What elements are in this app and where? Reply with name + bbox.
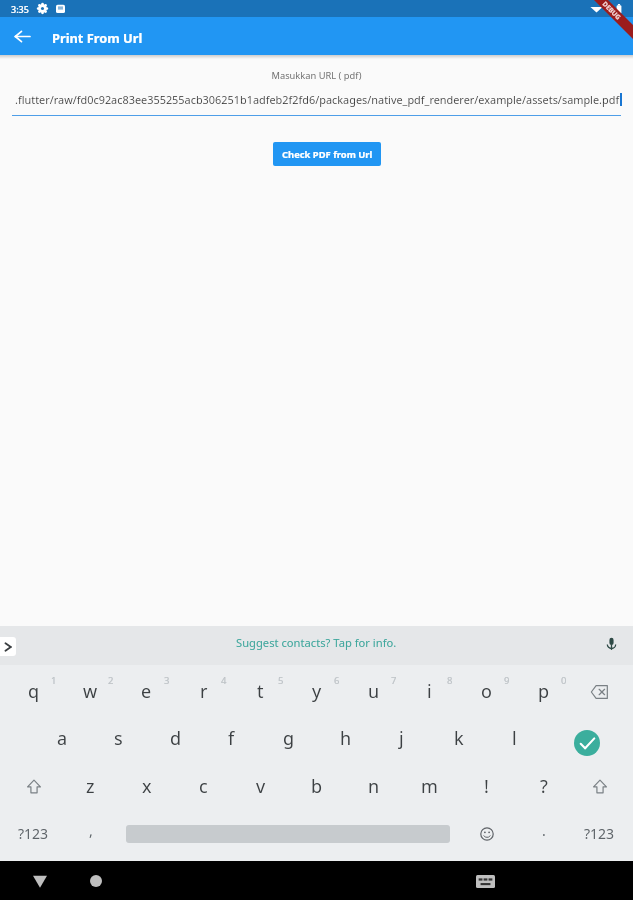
staticText: Masukkan URL ( pdf) xyxy=(0,69,633,82)
button[interactable]: Home xyxy=(82,867,110,895)
staticText: m xyxy=(421,774,438,799)
button[interactable]: Back xyxy=(0,17,44,55)
staticText: , xyxy=(89,821,93,840)
staticText: ?123 xyxy=(584,824,615,843)
staticText: l xyxy=(512,726,517,751)
staticText: d xyxy=(170,726,182,751)
staticText: h xyxy=(340,726,352,751)
staticText: f xyxy=(228,726,235,751)
staticText: v xyxy=(256,774,266,799)
staticText: u xyxy=(368,679,380,704)
button[interactable]: Check PDF from Url xyxy=(273,142,381,166)
staticText: p xyxy=(538,679,550,704)
button[interactable]: j xyxy=(373,715,430,762)
staticText: o xyxy=(481,679,492,704)
staticText: w xyxy=(83,679,98,704)
button[interactable]: Suggest contacts? Tap for info. xyxy=(230,631,403,654)
staticText: 3 xyxy=(164,674,170,687)
staticText: j xyxy=(399,726,404,751)
staticText: ? xyxy=(540,774,548,799)
staticText: k xyxy=(454,726,464,751)
staticText: q xyxy=(28,679,40,704)
button[interactable]: URL input field xyxy=(0,89,633,118)
button[interactable]: Shift xyxy=(571,763,628,810)
staticText: Check PDF from Url xyxy=(282,148,373,161)
button[interactable]: ! xyxy=(458,763,515,810)
staticText: 1 xyxy=(51,674,57,687)
button[interactable]: q xyxy=(5,668,62,715)
button[interactable]: w xyxy=(62,668,119,715)
button[interactable]: s xyxy=(90,715,147,762)
button[interactable]: t xyxy=(232,668,289,715)
button[interactable]: i xyxy=(401,668,458,715)
button[interactable]: a xyxy=(34,715,91,762)
button[interactable]: v xyxy=(232,763,289,810)
button[interactable]: Backspace xyxy=(571,668,628,715)
staticText: s xyxy=(114,726,123,751)
staticText: 3:35 xyxy=(11,3,29,15)
staticText: DEBUG xyxy=(601,0,623,21)
staticText: b xyxy=(311,774,323,799)
staticText: 0 xyxy=(561,674,567,687)
staticText: 4 xyxy=(221,674,227,687)
staticText: x xyxy=(142,774,152,799)
staticText: 2 xyxy=(108,674,114,687)
button[interactable]: g xyxy=(260,715,317,762)
staticText: .flutter/raw/fd0c92ac83ee355255acb306251… xyxy=(15,92,620,107)
staticText: r xyxy=(200,679,208,704)
button[interactable]: y xyxy=(288,668,345,715)
staticText: 6 xyxy=(334,674,340,687)
staticText: c xyxy=(199,774,208,799)
button[interactable]: . xyxy=(515,810,572,857)
staticText: ! xyxy=(484,774,489,799)
button[interactable]: ?123 xyxy=(571,810,628,857)
button[interactable]: e xyxy=(118,668,175,715)
staticText: i xyxy=(427,679,432,704)
button[interactable]: l xyxy=(486,715,543,762)
button[interactable]: Show suggestions xyxy=(0,637,16,656)
button[interactable]: p xyxy=(515,668,572,715)
button[interactable]: ?123 xyxy=(5,810,62,857)
button[interactable]: Back xyxy=(26,867,54,895)
staticText: 7 xyxy=(391,674,397,687)
staticText: . xyxy=(542,821,546,840)
staticText: 9 xyxy=(504,674,510,687)
button[interactable]: d xyxy=(147,715,204,762)
staticText: a xyxy=(57,726,68,751)
staticText: n xyxy=(368,774,380,799)
button[interactable]: h xyxy=(317,715,374,762)
button[interactable]: Shift xyxy=(5,763,62,810)
button[interactable]: u xyxy=(345,668,402,715)
staticText: Suggest contacts? Tap for info. xyxy=(236,635,397,650)
button[interactable]: z xyxy=(62,763,119,810)
button[interactable]: k xyxy=(430,715,487,762)
button[interactable]: x xyxy=(118,763,175,810)
staticText: e xyxy=(141,679,152,704)
button[interactable]: r xyxy=(175,668,232,715)
button[interactable]: Enter xyxy=(571,715,628,762)
staticText: 5 xyxy=(278,674,284,687)
staticText: g xyxy=(283,726,295,751)
button[interactable]: Space xyxy=(118,810,458,857)
button[interactable]: Switch keyboard xyxy=(471,867,499,895)
button[interactable]: b xyxy=(288,763,345,810)
staticText: y xyxy=(312,679,322,704)
button[interactable]: ? xyxy=(515,763,572,810)
button[interactable]: Voice input xyxy=(601,634,621,654)
button[interactable]: f xyxy=(203,715,260,762)
staticText: t xyxy=(257,679,264,704)
staticText: ?123 xyxy=(18,824,49,843)
staticText: z xyxy=(86,774,95,799)
button[interactable]: o xyxy=(458,668,515,715)
staticText: Print From Url xyxy=(52,29,143,46)
button[interactable]: , xyxy=(62,810,119,857)
button[interactable]: n xyxy=(345,763,402,810)
staticText: 8 xyxy=(447,674,453,687)
button[interactable]: Emoji xyxy=(458,810,515,857)
button[interactable]: m xyxy=(401,763,458,810)
button[interactable]: c xyxy=(175,763,232,810)
